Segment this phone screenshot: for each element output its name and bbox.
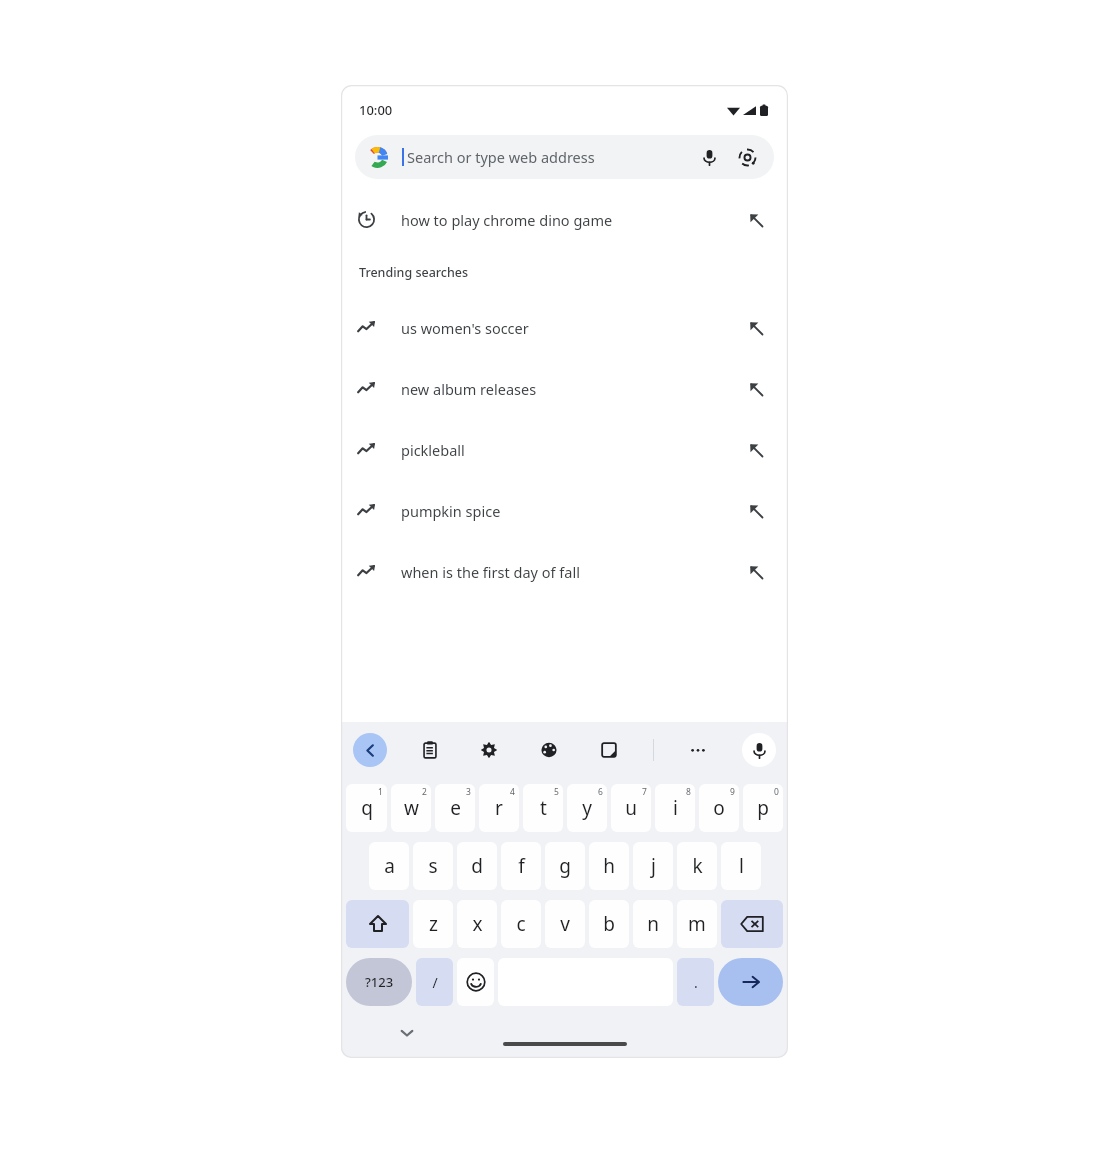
button[interactable]: when is the first day of fall [341, 541, 788, 602]
button[interactable]: how to play chrome dino game [341, 189, 788, 250]
staticText: r [495, 795, 503, 821]
button[interactable]: i [655, 784, 695, 832]
staticText: 9 [730, 786, 735, 798]
staticText: p [757, 795, 769, 821]
button[interactable]: x [457, 900, 497, 948]
staticText: / [432, 973, 438, 992]
button[interactable]: Insert pumpkin spice [740, 495, 772, 527]
button[interactable]: j [633, 842, 673, 890]
staticText: v [560, 911, 570, 937]
staticText: 5 [554, 786, 559, 798]
staticText: y [582, 795, 592, 821]
button[interactable]: Emoji [457, 958, 494, 1006]
button[interactable]: pickleball [341, 419, 788, 480]
button[interactable]: Insert new album releases [740, 373, 772, 405]
staticText: b [603, 911, 615, 937]
button[interactable]: h [589, 842, 629, 890]
staticText: new album releases [401, 379, 537, 399]
staticText: Search or type web address [407, 147, 595, 167]
staticText: z [429, 911, 438, 937]
button[interactable]: b [589, 900, 629, 948]
staticText: e [450, 795, 461, 821]
staticText: o [713, 795, 725, 821]
button[interactable]: Search or type web address [355, 135, 774, 179]
button[interactable]: y [567, 784, 607, 832]
button[interactable]: Sticker [593, 734, 625, 766]
staticText: 4 [510, 786, 515, 798]
button[interactable]: Google Lens [732, 142, 762, 172]
button[interactable]: pumpkin spice [341, 480, 788, 541]
button[interactable]: e [435, 784, 475, 832]
button[interactable]: / [416, 958, 453, 1006]
button[interactable]: l [721, 842, 761, 890]
button[interactable]: p [743, 784, 783, 832]
staticText: c [516, 911, 526, 937]
staticText: i [673, 795, 678, 821]
button[interactable]: t [523, 784, 563, 832]
staticText: j [651, 853, 656, 879]
button[interactable]: Voice input [742, 733, 776, 767]
button[interactable]: Backspace [721, 900, 783, 948]
button[interactable]: Insert when is the first day of fall [740, 556, 772, 588]
staticText: l [739, 853, 744, 879]
staticText: h [603, 853, 615, 879]
staticText: pumpkin spice [401, 501, 501, 521]
button[interactable]: More options [682, 734, 714, 766]
button[interactable]: ?123 [346, 958, 412, 1006]
staticText: 0 [774, 786, 779, 798]
button[interactable]: m [677, 900, 717, 948]
staticText: how to play chrome dino game [401, 210, 613, 230]
button[interactable]: c [501, 900, 541, 948]
button[interactable]: a [369, 842, 409, 890]
button[interactable]: f [501, 842, 541, 890]
button[interactable]: Settings [473, 734, 505, 766]
staticText: f [518, 853, 525, 879]
button[interactable]: Voice search [694, 142, 724, 172]
staticText: when is the first day of fall [401, 562, 580, 582]
button[interactable]: u [611, 784, 651, 832]
button[interactable]: g [545, 842, 585, 890]
staticText: u [625, 795, 637, 821]
button[interactable]: s [413, 842, 453, 890]
staticText: 7 [642, 786, 647, 798]
staticText: pickleball [401, 440, 465, 460]
button[interactable]: r [479, 784, 519, 832]
button[interactable]: Shift [346, 900, 409, 948]
button[interactable]: Insert how to play chrome dino game [740, 204, 772, 236]
button[interactable]: q [346, 784, 387, 832]
staticText: 10:00 [359, 101, 393, 119]
button[interactable]: Insert us women's soccer [740, 312, 772, 344]
staticText: 1 [378, 786, 383, 798]
staticText: g [559, 853, 571, 879]
button[interactable]: Themes [533, 734, 565, 766]
staticText: t [540, 795, 547, 821]
staticText: . [694, 973, 698, 992]
button[interactable]: Go [718, 958, 783, 1006]
button[interactable]: new album releases [341, 358, 788, 419]
staticText: Trending searches [359, 264, 469, 281]
button[interactable]: z [413, 900, 453, 948]
button[interactable]: w [391, 784, 431, 832]
button[interactable]: us women's soccer [341, 297, 788, 358]
button[interactable]: Insert pickleball [740, 434, 772, 466]
button[interactable]: k [677, 842, 717, 890]
button[interactable]: Clipboard [414, 734, 446, 766]
staticText: us women's soccer [401, 318, 529, 338]
button[interactable]: o [699, 784, 739, 832]
button[interactable]: d [457, 842, 497, 890]
button[interactable]: Hide keyboard [393, 1019, 421, 1047]
staticText: q [361, 795, 373, 821]
button[interactable]: . [677, 958, 714, 1006]
staticText: x [472, 911, 483, 937]
staticText: d [471, 853, 483, 879]
staticText: 8 [686, 786, 691, 798]
button[interactable]: Back [353, 733, 387, 767]
staticText: 3 [466, 786, 471, 798]
staticText: k [692, 853, 703, 879]
staticText: n [647, 911, 659, 937]
staticText: 2 [422, 786, 427, 798]
button[interactable]: n [633, 900, 673, 948]
button[interactable]: v [545, 900, 585, 948]
staticText: ?123 [365, 973, 394, 991]
